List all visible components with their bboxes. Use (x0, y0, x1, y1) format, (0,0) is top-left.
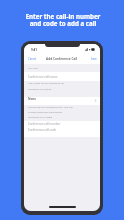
staticText: Add a name for this conference call (28, 82, 65, 85)
button[interactable] (24, 121, 100, 137)
staticText: Add Conference Call (46, 57, 78, 61)
staticText: CONFERENCE CALL SERVICE (28, 88, 52, 90)
staticText: Conference call name (28, 75, 58, 79)
staticText: 9:41 (31, 48, 37, 52)
staticText: Save (91, 57, 97, 61)
staticText: Enter the call-in number and code to add… (2, 12, 124, 28)
staticText: Conference call number (28, 122, 61, 126)
button[interactable] (24, 72, 100, 81)
staticText: CALL NAME (28, 67, 38, 69)
button[interactable]: Save (91, 57, 97, 61)
staticText: is never shared with third parties. (28, 111, 63, 114)
staticText: Securely dial into conference calls. You… (28, 106, 73, 109)
staticText: None (28, 97, 37, 101)
staticText: CONFERENCE CALL NUMBER (28, 116, 53, 118)
staticText: Conference call code (28, 128, 57, 132)
other: Choose conference call service (94, 99, 97, 102)
button[interactable]: Cancel (28, 57, 37, 61)
button[interactable] (24, 97, 100, 105)
staticText: Cancel (28, 57, 37, 61)
